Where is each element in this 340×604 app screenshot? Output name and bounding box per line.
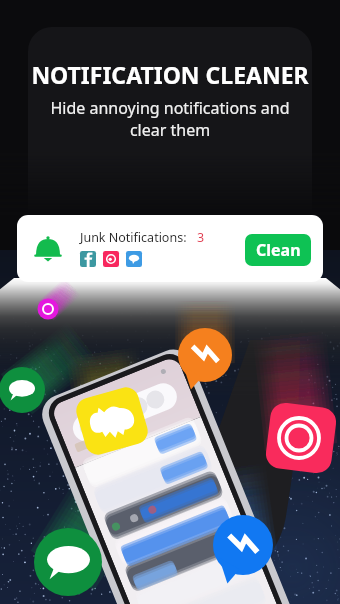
- staticText: Hide annoying notifications and clear th…: [0, 97, 340, 141]
- staticText: Junk Notifications:: [80, 229, 187, 246]
- button[interactable]: Clean: [245, 234, 311, 266]
- staticText: Clean: [256, 239, 301, 261]
- staticText: NOTIFICATION CLEANER: [0, 59, 340, 90]
- staticText: 3: [197, 229, 205, 246]
- button[interactable]: Junk Notifications:: [17, 215, 323, 282]
